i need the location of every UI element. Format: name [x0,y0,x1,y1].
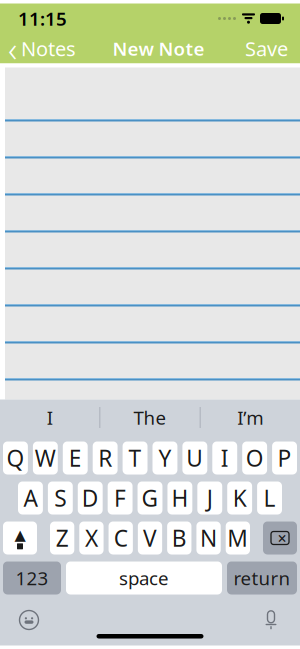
staticText: B [172,523,187,553]
staticText: X [85,523,98,553]
button[interactable]: A [18,481,43,514]
button[interactable]: Y [152,441,177,474]
button[interactable]: F [108,481,133,514]
button[interactable]: return [227,561,297,594]
staticText: P [277,443,291,473]
staticText: N [200,523,217,553]
button[interactable]: ‹ [0,33,84,63]
button[interactable]: Shift [3,521,37,554]
staticText: F [114,483,126,513]
staticText: ▲ [14,527,25,543]
staticText: M [227,523,248,553]
button[interactable]: Z [50,521,74,554]
button[interactable]: U [182,441,207,474]
button[interactable]: I [212,441,237,474]
staticText: D [82,483,99,513]
staticText: R [98,443,112,473]
staticText: 123 [15,566,48,590]
button[interactable]: Q [3,441,28,474]
button[interactable]: C [109,521,133,554]
staticText: ‹ [8,25,17,71]
button[interactable]: space [66,561,222,594]
staticText: Save [245,35,288,62]
staticText: Q [6,443,24,473]
button[interactable]: O [242,441,267,474]
staticText: space [119,566,169,590]
button[interactable]: Delete [263,521,297,554]
button[interactable]: M [226,521,250,554]
button[interactable]: G [138,481,162,514]
staticText: The [133,405,166,430]
button[interactable]: I’m [201,399,300,435]
button[interactable]: X [79,521,104,554]
staticText: J [207,483,213,513]
staticText: × [277,527,286,549]
staticText: V [143,523,157,553]
staticText: A [23,483,37,513]
staticText: I [221,443,229,473]
button[interactable]: The [100,399,200,435]
staticText: K [233,483,247,513]
button[interactable]: P [272,441,297,474]
button[interactable]: K [227,481,252,514]
staticText: Z [56,523,69,553]
staticText: S [54,483,66,513]
button[interactable]: B [167,521,191,554]
button[interactable]: R [93,441,118,474]
staticText: G [141,483,158,513]
staticText: I’m [237,405,263,430]
button[interactable]: J [197,481,222,514]
staticText: Notes [21,35,76,62]
button[interactable]: 123 [3,561,61,594]
staticText: H [171,483,188,513]
staticText: C [114,523,128,553]
button[interactable]: I [0,399,99,435]
button[interactable]: T [123,441,147,474]
staticText: New Note [112,36,204,61]
staticText: O [246,443,264,473]
button[interactable]: Save [233,33,300,63]
button[interactable]: L [257,481,282,514]
staticText: T [128,443,141,473]
button[interactable]: Dictation [254,603,288,637]
staticText: W [35,443,56,473]
button[interactable]: V [138,521,162,554]
button[interactable]: D [78,481,103,514]
staticText: 11:15 [18,6,67,31]
button[interactable]: H [167,481,192,514]
staticText: return [233,566,290,590]
button[interactable]: S [48,481,73,514]
button[interactable]: W [33,441,58,474]
staticText: U [186,443,203,473]
staticText: E [69,443,82,473]
staticText: L [264,483,276,513]
button[interactable]: E [63,441,88,474]
staticText: I [47,405,53,430]
staticText: Y [158,443,171,473]
button[interactable]: N [196,521,221,554]
button[interactable]: Emoji keyboard [12,603,46,637]
